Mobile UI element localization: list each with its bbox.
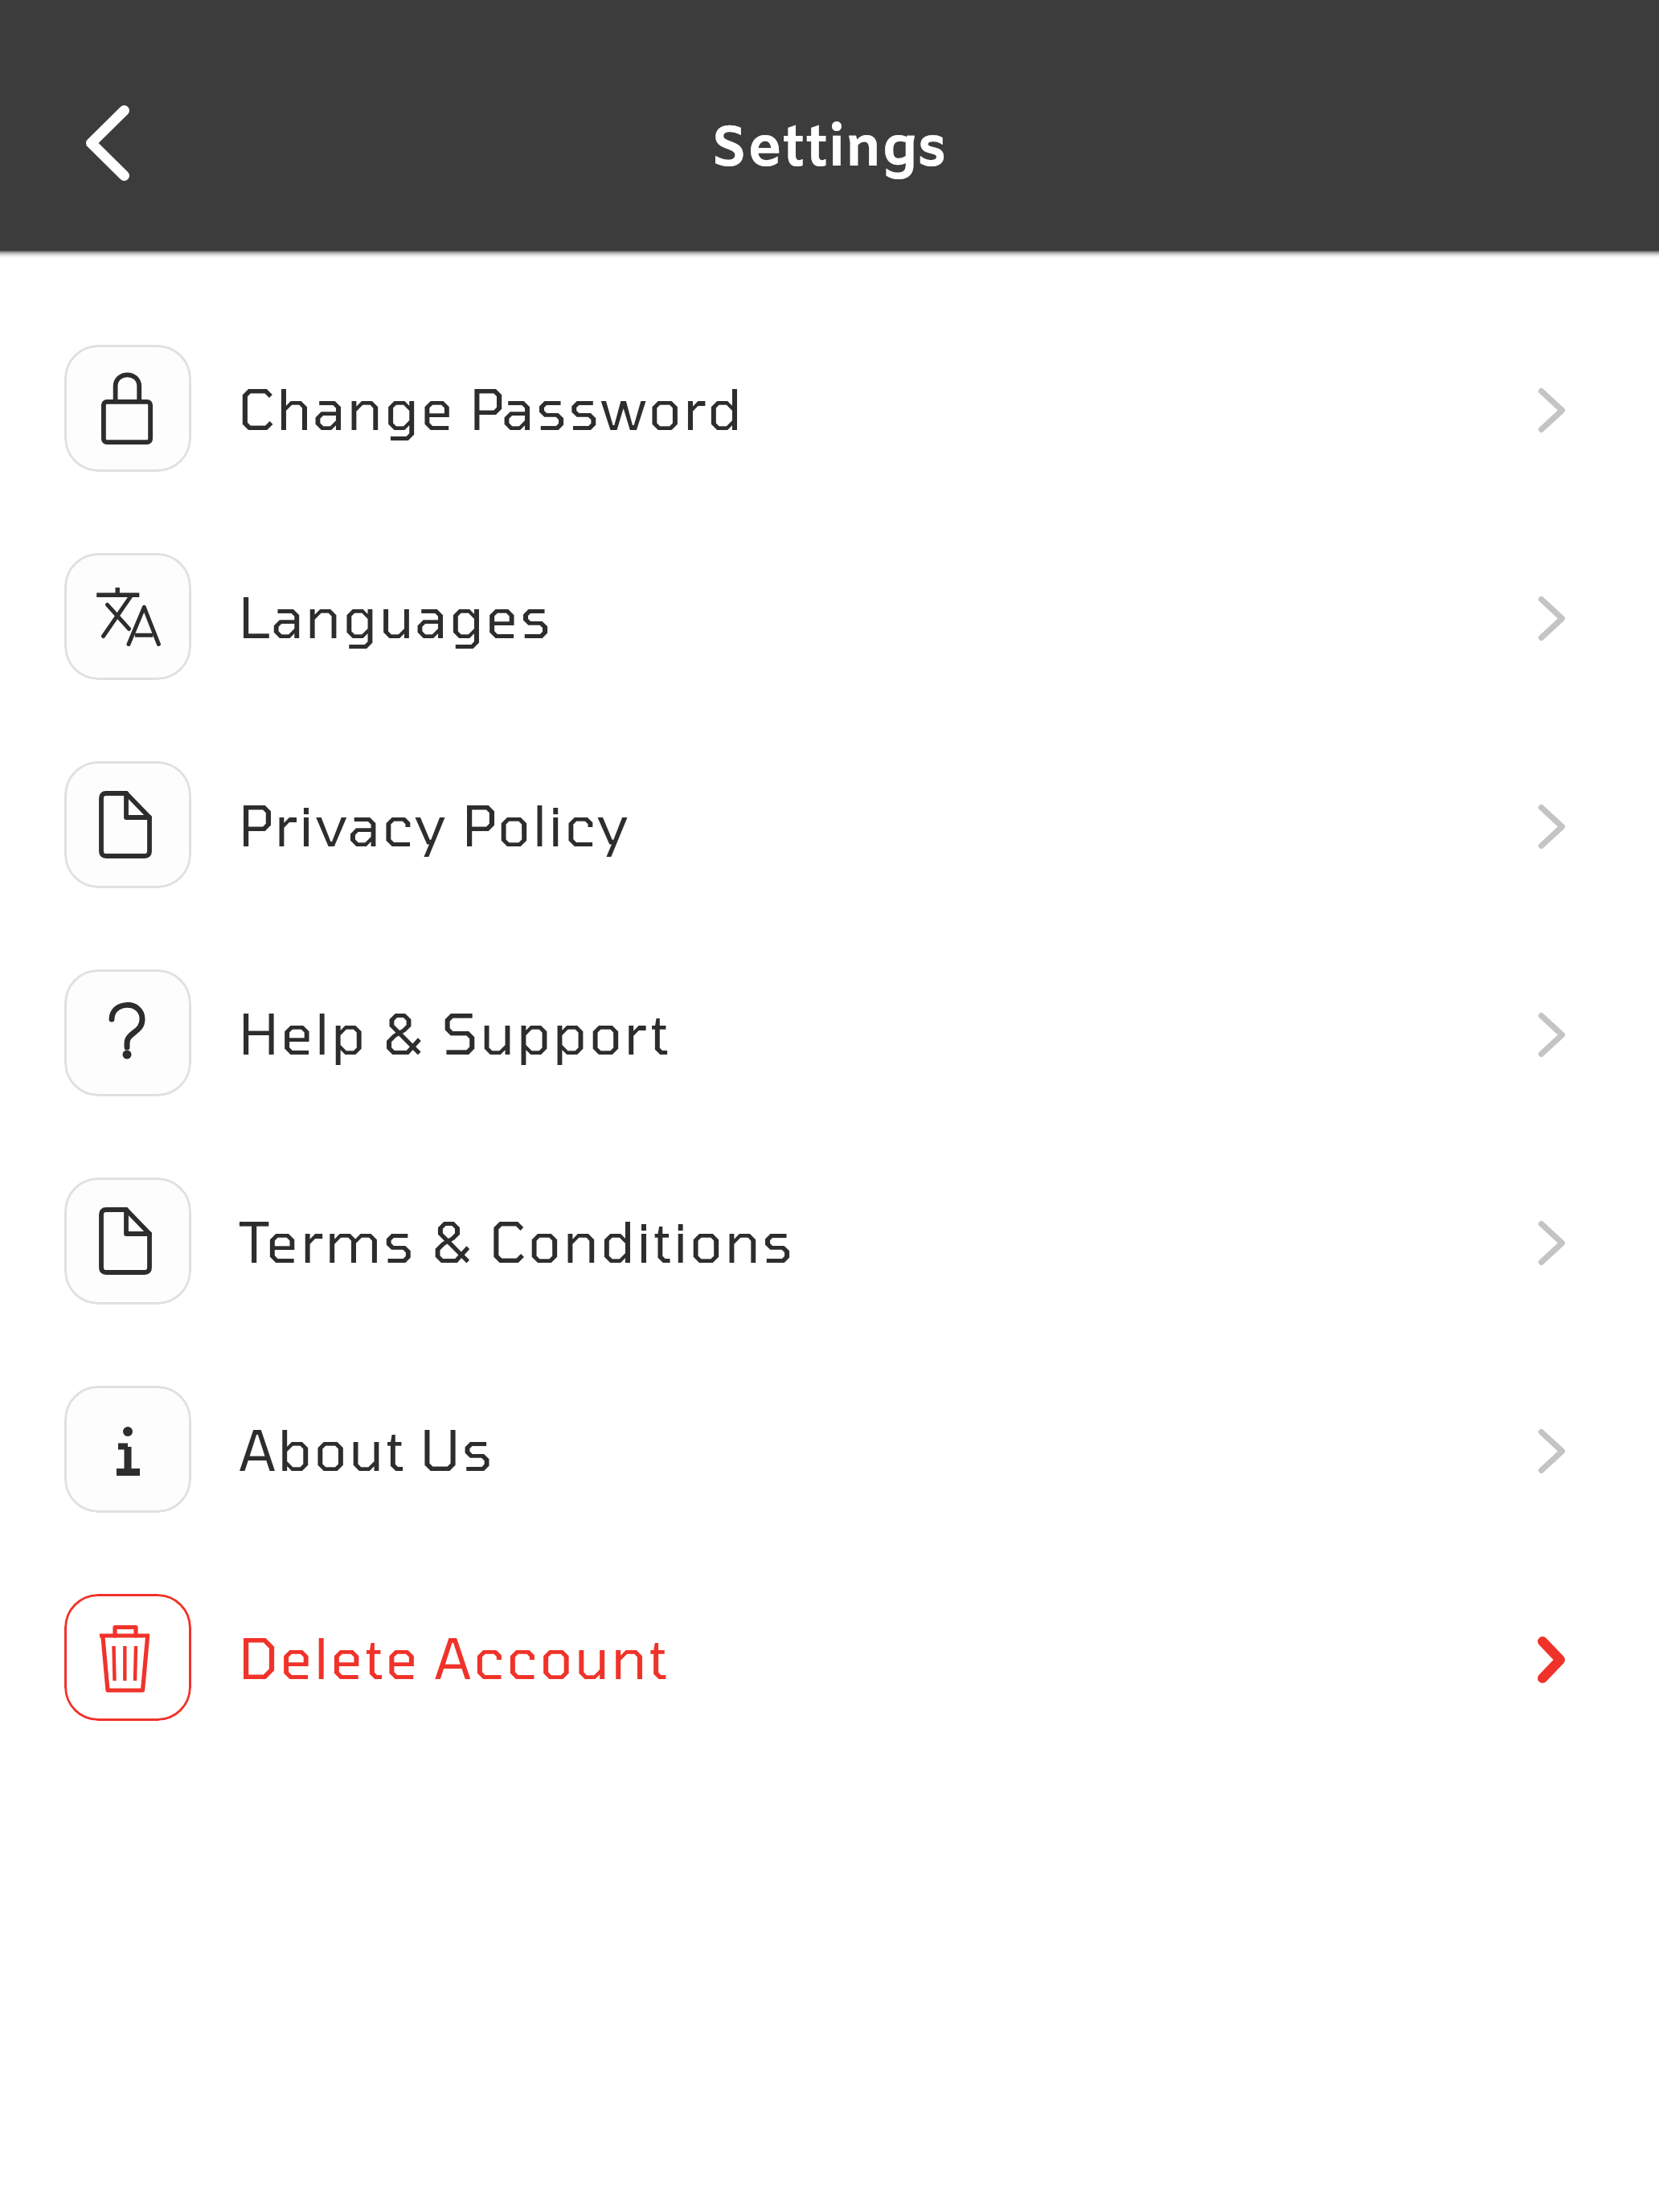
- button[interactable]: Privacy Policy: [0, 720, 1659, 928]
- staticText: Change Password: [239, 375, 744, 441]
- staticText: Languages: [239, 583, 553, 649]
- button[interactable]: Change Password: [0, 304, 1659, 512]
- staticText: Delete Account: [239, 1624, 670, 1690]
- button[interactable]: Delete Account: [0, 1553, 1659, 1761]
- button[interactable]: Back: [59, 95, 156, 191]
- button[interactable]: Terms & Conditions: [0, 1137, 1659, 1345]
- staticText: Settings: [0, 113, 1658, 189]
- staticText: Terms & Conditions: [239, 1207, 795, 1274]
- button[interactable]: Help & Support: [0, 928, 1659, 1137]
- staticText: Help & Support: [239, 999, 671, 1066]
- button[interactable]: Languages: [0, 512, 1659, 720]
- staticText: About Us: [239, 1415, 495, 1482]
- staticText: Privacy Policy: [239, 791, 631, 858]
- button[interactable]: About Us: [0, 1345, 1659, 1553]
